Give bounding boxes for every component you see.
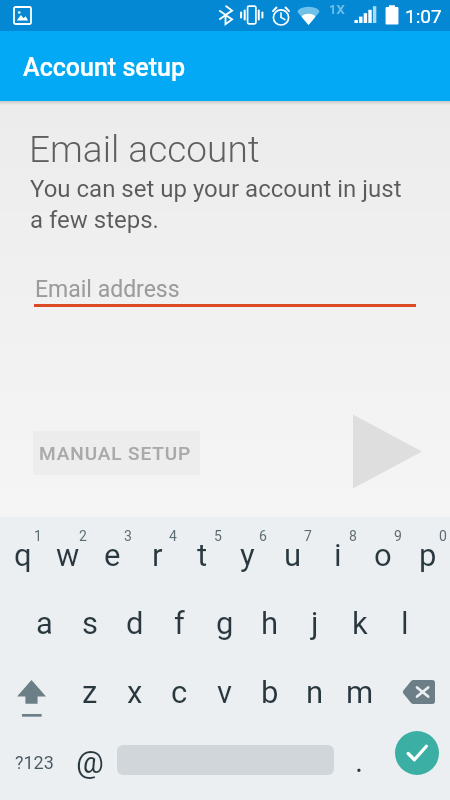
staticText: r [152,537,163,573]
staticText: c [171,674,188,710]
staticText: o [374,537,392,573]
button[interactable]: b [247,652,292,720]
button[interactable]: Period [340,720,382,797]
button[interactable]: m [337,652,382,720]
staticText: j [311,605,319,641]
staticText: z [82,674,98,710]
staticText: 1 [34,528,42,544]
staticText: g [216,605,234,641]
staticText: 2 [79,528,87,544]
staticText: x [127,674,143,710]
button[interactable]: f [157,585,202,652]
staticText: t [197,537,208,573]
staticText: v [217,674,233,710]
staticText: m [346,674,374,710]
button[interactable]: j [292,585,337,652]
staticText: n [306,674,324,710]
button[interactable]: c [157,652,202,720]
button[interactable]: k [337,585,382,652]
button[interactable]: Shift [0,652,67,720]
button[interactable]: z [67,652,112,720]
staticText: u [284,537,302,573]
button[interactable]: Backspace [383,652,450,720]
button[interactable]: a [22,585,67,652]
staticText: y [240,537,255,573]
staticText: 1:07 [405,5,442,27]
button[interactable]: Done [382,720,450,797]
staticText: a [36,605,53,641]
staticText: q [14,537,32,573]
button[interactable]: d [112,585,157,652]
staticText: ?123 [15,752,54,773]
button[interactable]: x [112,652,157,720]
button[interactable]: t [180,517,225,585]
button[interactable]: At sign [67,720,112,797]
staticText: 1X [329,2,345,17]
staticText: Email account [29,128,260,171]
staticText: 3 [124,528,132,544]
staticText: k [352,605,368,641]
staticText: @ [76,744,104,780]
button[interactable]: Space [112,720,340,797]
button[interactable]: i [315,517,360,585]
staticText: 7 [304,528,312,544]
staticText: h [261,605,279,641]
other: Screenshot [14,7,31,24]
button[interactable]: s [67,585,112,652]
button[interactable]: w [45,517,90,585]
button[interactable]: g [202,585,247,652]
button[interactable]: o [360,517,405,585]
button[interactable]: v [202,652,247,720]
staticText: e [104,537,121,573]
staticText: MANUAL SETUP [39,442,192,464]
button[interactable]: y [225,517,270,585]
button[interactable]: p [405,517,450,585]
staticText: 4 [169,528,177,544]
staticText: 0 [439,528,447,544]
staticText: . [355,743,364,779]
button[interactable]: MANUAL SETUP [33,431,200,475]
staticText: 6 [259,528,267,544]
staticText: i [334,537,342,573]
staticText: 5 [214,528,222,544]
staticText: w [56,537,80,573]
staticText: d [126,605,144,641]
button[interactable]: n [292,652,337,720]
staticText: 9 [394,528,402,544]
staticText: p [419,537,437,573]
staticText: f [174,605,185,641]
button[interactable]: Next [338,401,435,503]
staticText: You can set up your account in just a fe… [30,175,402,234]
staticText: 8 [349,528,357,544]
staticText: Account setup [23,53,186,82]
button[interactable]: q [0,517,45,585]
button[interactable]: h [247,585,292,652]
button[interactable]: l [382,585,427,652]
staticText: l [401,605,409,641]
staticText: s [82,605,98,641]
staticText: Email address [35,276,180,303]
button[interactable]: e [90,517,135,585]
staticText: b [261,674,279,710]
button[interactable]: Symbols [0,720,67,797]
button[interactable]: r [135,517,180,585]
button[interactable]: u [270,517,315,585]
